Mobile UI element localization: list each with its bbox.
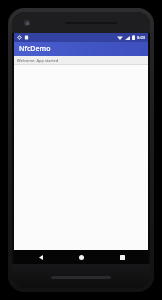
staticText: NfcDemo [19, 44, 51, 54]
button[interactable]: Home [67, 250, 95, 264]
staticText: Welcome: App started [17, 58, 59, 63]
staticText: 8:03 [137, 35, 145, 40]
button[interactable]: Welcome: App started [14, 56, 148, 64]
button[interactable]: NfcDemo [14, 42, 148, 56]
button[interactable]: Recent apps [108, 250, 136, 264]
button[interactable]: Back [27, 250, 55, 264]
